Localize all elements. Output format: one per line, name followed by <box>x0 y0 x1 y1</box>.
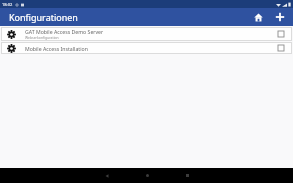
staticText: Mobile Access Installation <box>25 45 88 52</box>
button[interactable]: Home <box>127 168 167 183</box>
button[interactable]: Back <box>87 168 127 183</box>
button[interactable]: Select configuration <box>276 29 286 39</box>
button[interactable]: Select configuration <box>276 43 286 53</box>
staticText: 18:02 <box>2 2 13 7</box>
button[interactable]: Recent apps <box>167 168 207 183</box>
staticText: Konfigurationen <box>9 11 78 23</box>
button[interactable]: Home <box>250 9 266 25</box>
staticText: GAT Mobile Access Demo Server <box>25 28 104 35</box>
staticText: Webserkonfiguration <box>25 35 59 40</box>
button[interactable]: Mobile Access Installation <box>1 42 292 54</box>
button[interactable]: Add configuration <box>272 9 288 25</box>
button[interactable]: GAT Mobile Access Demo Server <box>1 27 292 41</box>
